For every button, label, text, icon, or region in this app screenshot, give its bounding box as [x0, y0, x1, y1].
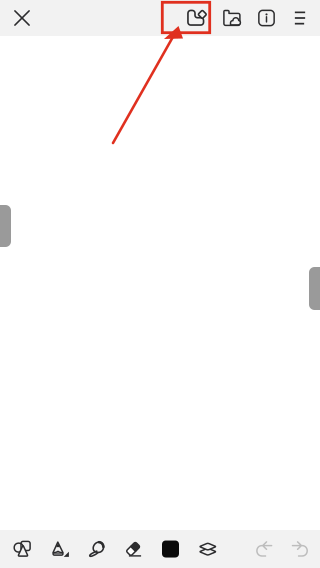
button[interactable]: Cloud documents — [215, 0, 249, 35]
button[interactable]: Shape tools — [179, 0, 215, 35]
button[interactable]: Shapes — [3, 530, 41, 568]
button[interactable]: Menu — [284, 0, 316, 35]
button[interactable]: Lasso select — [79, 530, 115, 568]
button[interactable]: Redo — [282, 530, 317, 568]
button[interactable]: Eraser — [115, 530, 152, 568]
button[interactable]: Information — [249, 0, 284, 35]
button[interactable]: Undo — [246, 530, 282, 568]
button[interactable]: Pen — [41, 530, 79, 568]
button[interactable]: Layers — [189, 530, 227, 568]
button[interactable]: Close — [4, 0, 40, 36]
button[interactable]: Colour — [152, 530, 189, 568]
